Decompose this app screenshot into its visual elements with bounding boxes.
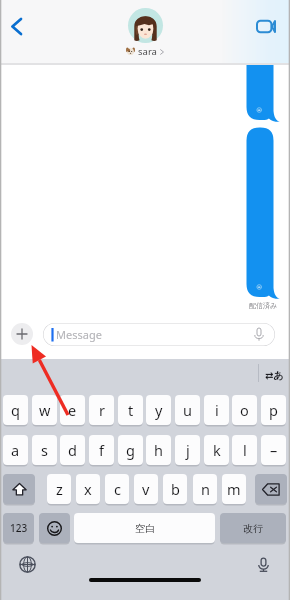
button[interactable]: n (193, 474, 217, 504)
staticText: d (68, 440, 77, 460)
button[interactable]: ⇄あ (263, 367, 286, 383)
button[interactable]: q (3, 395, 28, 425)
staticText: x (84, 479, 92, 499)
staticText: f (99, 440, 104, 460)
staticText: l (243, 440, 247, 460)
staticText: sara (138, 45, 157, 58)
staticText: z (56, 479, 63, 499)
staticText: – (270, 440, 278, 460)
button[interactable]: r (89, 395, 114, 425)
button[interactable]: c (105, 474, 129, 504)
staticText: 配信済み (249, 301, 278, 310)
button[interactable]: b (163, 474, 187, 504)
button[interactable]: 空白 (74, 513, 215, 543)
button[interactable]: z (47, 474, 71, 504)
staticText: n (201, 479, 210, 499)
button[interactable]: FaceTime video call (222, 0, 290, 64)
button[interactable]: w (32, 395, 57, 425)
staticText: 空白 (135, 522, 155, 535)
button[interactable]: d (60, 435, 85, 465)
button[interactable]: sara (126, 8, 164, 58)
button[interactable]: g (118, 435, 143, 465)
staticText: w (39, 400, 51, 420)
staticText: q (11, 400, 20, 420)
staticText: y (155, 400, 163, 420)
staticText: e (68, 400, 77, 420)
staticText: i (215, 400, 219, 420)
staticText: 123 (10, 521, 28, 535)
button[interactable]: u (175, 395, 200, 425)
staticText: s (41, 440, 48, 460)
staticText: a (11, 440, 20, 460)
button[interactable]: Backspace (255, 474, 287, 504)
staticText: m (227, 479, 241, 499)
staticText: u (183, 400, 192, 420)
button[interactable]: Emoji (39, 513, 70, 543)
button[interactable]: 123 (3, 513, 34, 543)
staticText: h (154, 440, 163, 460)
button[interactable]: l (232, 435, 257, 465)
button[interactable]: t (118, 395, 143, 425)
button[interactable]: e (60, 395, 85, 425)
button[interactable]: m (222, 474, 246, 504)
staticText: b (171, 479, 180, 499)
staticText: v (142, 479, 150, 499)
button[interactable]: Switch keyboard language (14, 551, 40, 577)
button[interactable]: Shift (3, 474, 35, 504)
staticText: ⇄あ (265, 369, 284, 382)
staticText: o (240, 400, 249, 420)
button[interactable]: Dictation (250, 551, 276, 577)
staticText: t (128, 400, 134, 420)
button[interactable]: Message (43, 323, 275, 346)
button[interactable]: p (261, 395, 286, 425)
staticText: Message (56, 327, 102, 342)
staticText: k (213, 440, 221, 460)
button[interactable]: o (232, 395, 257, 425)
staticText: 改行 (243, 522, 263, 535)
button[interactable]: Add attachment (11, 323, 33, 345)
button[interactable]: a (3, 435, 28, 465)
button[interactable]: i (204, 395, 229, 425)
staticText: p (269, 400, 278, 420)
staticText: r (99, 400, 105, 420)
button[interactable]: Back (2, 0, 32, 52)
button[interactable]: v (134, 474, 158, 504)
staticText: g (126, 440, 135, 460)
button[interactable]: – (261, 435, 286, 465)
button[interactable]: 改行 (220, 513, 286, 543)
staticText: j (186, 440, 190, 460)
button[interactable]: j (175, 435, 200, 465)
button[interactable]: f (89, 435, 114, 465)
button[interactable]: s (32, 435, 57, 465)
staticText: c (114, 479, 121, 499)
button[interactable]: k (204, 435, 229, 465)
button[interactable]: x (76, 474, 100, 504)
button[interactable]: y (146, 395, 171, 425)
button[interactable]: h (146, 435, 171, 465)
